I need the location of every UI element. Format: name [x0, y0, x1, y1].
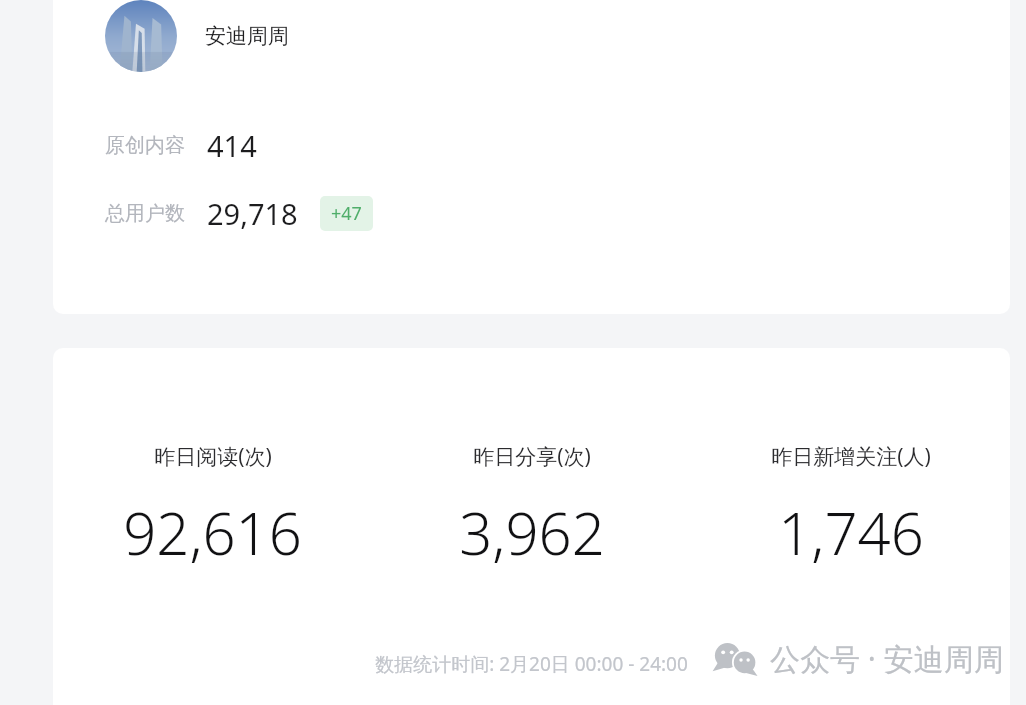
- staticText: 3,962: [459, 493, 605, 572]
- button[interactable]: 昨日分享(次): [372, 442, 691, 572]
- button[interactable]: 昨日阅读(次): [53, 348, 1010, 705]
- button[interactable]: Profile avatar: [105, 0, 289, 72]
- staticText: 414: [207, 126, 257, 165]
- staticText: 安迪周周: [205, 23, 289, 49]
- staticText: 29,718: [207, 194, 298, 233]
- button[interactable]: 昨日阅读(次): [53, 442, 372, 572]
- button[interactable]: Profile avatar: [53, 0, 1010, 314]
- staticText: 1,746: [778, 493, 924, 572]
- button[interactable]: 昨日新增关注(人): [691, 442, 1010, 572]
- other: Profile avatar: [105, 0, 177, 72]
- button[interactable]: WeChat: [714, 638, 1004, 679]
- staticText: 原创内容: [105, 133, 185, 158]
- staticText: +47: [331, 201, 362, 226]
- button[interactable]: 原创内容: [105, 126, 1010, 165]
- staticText: 昨日新增关注(人): [771, 442, 931, 471]
- button[interactable]: 总用户数: [105, 194, 1010, 233]
- other: WeChat: [714, 642, 758, 676]
- staticText: 总用户数: [105, 201, 185, 226]
- staticText: 数据统计时间: 2月20日 00:00 - 24:00: [375, 651, 688, 677]
- staticText: 公众号 · 安迪周周: [770, 638, 1004, 679]
- staticText: 昨日阅读(次): [154, 442, 272, 471]
- staticText: 92,616: [123, 493, 302, 572]
- staticText: 昨日分享(次): [473, 442, 591, 471]
